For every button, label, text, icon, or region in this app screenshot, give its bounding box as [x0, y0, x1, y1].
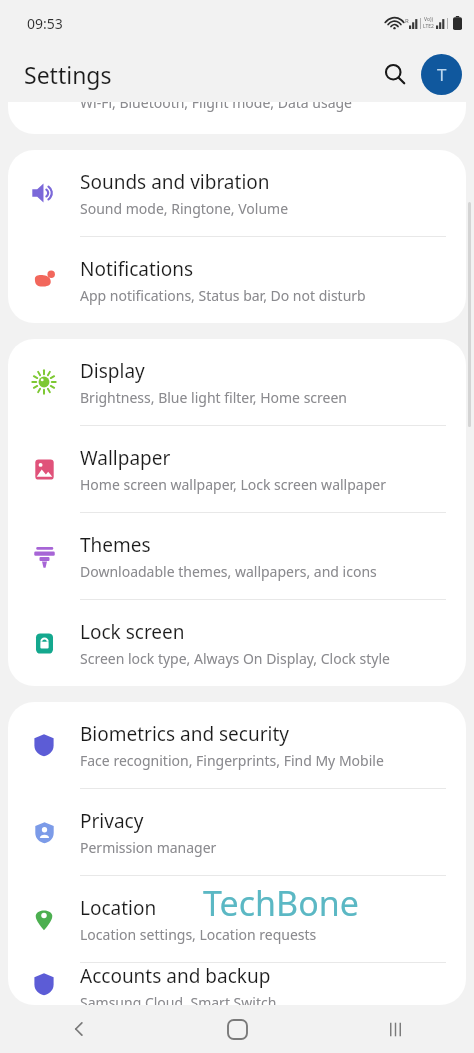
staticText: Downloadable themes, wallpapers, and ico… [80, 562, 377, 581]
staticText: Lock screen [80, 619, 185, 645]
button[interactable]: Lock screen [8, 600, 466, 686]
button[interactable]: Location [8, 876, 466, 962]
staticText: Permission manager [80, 838, 217, 857]
button[interactable]: Accounts and backup [8, 963, 466, 1005]
staticText: Themes [80, 532, 151, 558]
button[interactable]: Recent apps [316, 1005, 474, 1053]
button[interactable]: Home [158, 1005, 316, 1053]
button[interactable]: Privacy [8, 789, 466, 875]
button[interactable]: Themes [8, 513, 466, 599]
button[interactable]: Biometrics and security [8, 702, 466, 788]
button[interactable]: Wallpaper [8, 426, 466, 512]
button[interactable]: Notifications [8, 237, 466, 323]
staticText: T [437, 63, 447, 86]
staticText: 09:53 [27, 14, 63, 33]
staticText: Wallpaper [80, 445, 171, 471]
staticText: Settings [24, 59, 112, 90]
staticText: Screen lock type, Always On Display, Clo… [80, 649, 390, 668]
button[interactable]: Sounds and vibration [8, 150, 466, 236]
staticText: LTE2 [423, 23, 434, 30]
button[interactable]: Search [372, 51, 418, 97]
button[interactable]: Account [421, 54, 462, 95]
staticText: Biometrics and security [80, 721, 290, 747]
staticText: Home screen wallpaper, Lock screen wallp… [80, 475, 386, 494]
staticText: Brightness, Blue light filter, Home scre… [80, 388, 348, 407]
staticText: Display [80, 358, 145, 384]
staticText: Privacy [80, 808, 144, 834]
staticText: Sound mode, Ringtone, Volume [80, 199, 289, 218]
button[interactable]: Wi-Fi, Bluetooth, Flight mode, Data usag… [8, 102, 466, 134]
button[interactable]: Back [0, 1005, 158, 1053]
staticText: Vo)) [424, 16, 433, 23]
staticText: R [405, 17, 409, 25]
staticText: Sounds and vibration [80, 169, 270, 195]
staticText: App notifications, Status bar, Do not di… [80, 286, 366, 305]
staticText: Wi-Fi, Bluetooth, Flight mode, Data usag… [80, 102, 353, 112]
staticText: TechBone [203, 880, 359, 926]
button[interactable]: Display [8, 339, 466, 425]
staticText: Notifications [80, 256, 194, 282]
staticText: Location settings, Location requests [80, 925, 317, 944]
staticText: Accounts and backup [80, 963, 271, 989]
staticText: Location [80, 895, 157, 921]
staticText: Face recognition, Fingerprints, Find My … [80, 751, 384, 770]
staticText: Samsung Cloud, Smart Switch [80, 993, 277, 1005]
